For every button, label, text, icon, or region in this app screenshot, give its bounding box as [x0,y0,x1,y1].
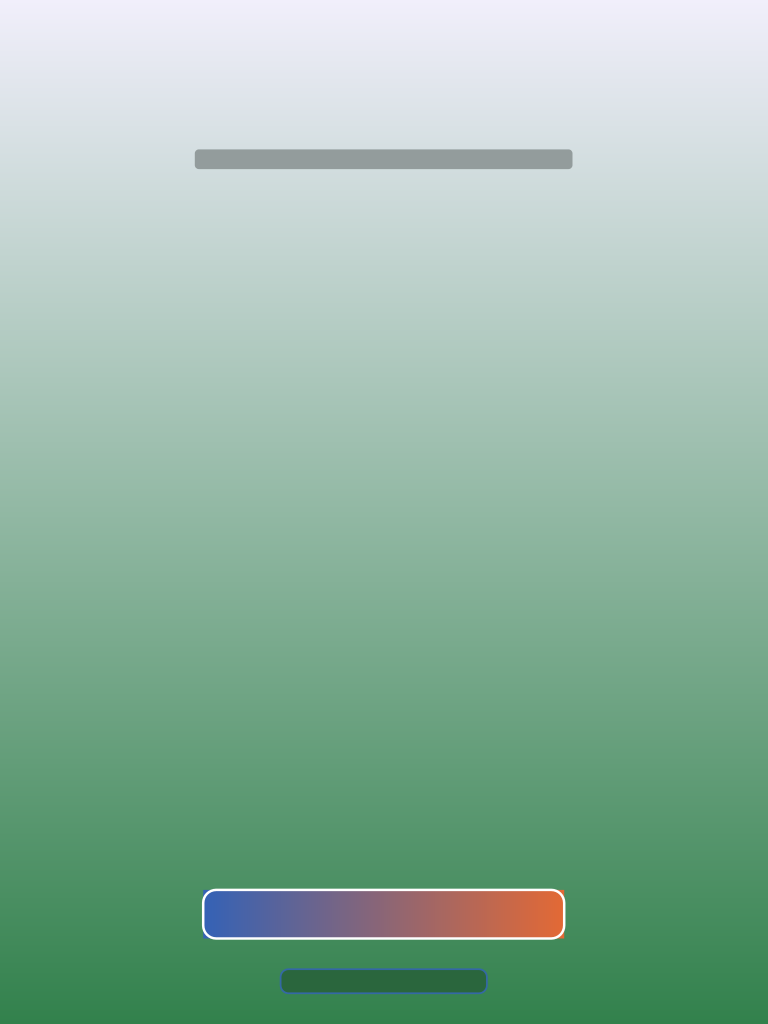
button[interactable]: Continue [203,890,564,938]
button[interactable]: Secondary action [281,969,487,993]
